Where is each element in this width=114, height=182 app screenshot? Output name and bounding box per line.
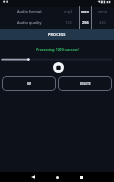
button[interactable]: PROCESS xyxy=(0,29,114,40)
staticText: wma xyxy=(98,9,107,14)
staticText: wav xyxy=(81,9,89,14)
staticText: 256 xyxy=(82,20,89,25)
staticText: mp3 xyxy=(64,9,73,14)
staticText: 192 xyxy=(65,20,72,25)
button[interactable]: mp3 xyxy=(57,6,79,17)
button[interactable]: 320 xyxy=(91,17,114,28)
staticText: Audio format xyxy=(17,9,42,14)
staticText: Processing: 100% success! xyxy=(36,47,79,51)
staticText: 320 xyxy=(99,20,106,25)
button[interactable]: 256 xyxy=(79,17,91,28)
button[interactable]: Stop recording xyxy=(53,62,64,73)
staticText: DELETE xyxy=(80,82,91,86)
button[interactable]: 192 xyxy=(57,17,79,28)
button[interactable]: DELETE xyxy=(58,76,112,91)
button[interactable]: wav xyxy=(79,6,91,17)
staticText: PROCESS xyxy=(48,32,66,37)
button[interactable]: Back xyxy=(27,172,38,182)
staticText: OK xyxy=(27,82,32,86)
button[interactable]: Recent apps xyxy=(76,172,87,182)
staticText: Audio quality xyxy=(17,20,42,25)
button[interactable]: wma xyxy=(91,6,114,17)
button[interactable]: Home xyxy=(52,172,63,182)
button[interactable]: OK xyxy=(2,76,56,91)
